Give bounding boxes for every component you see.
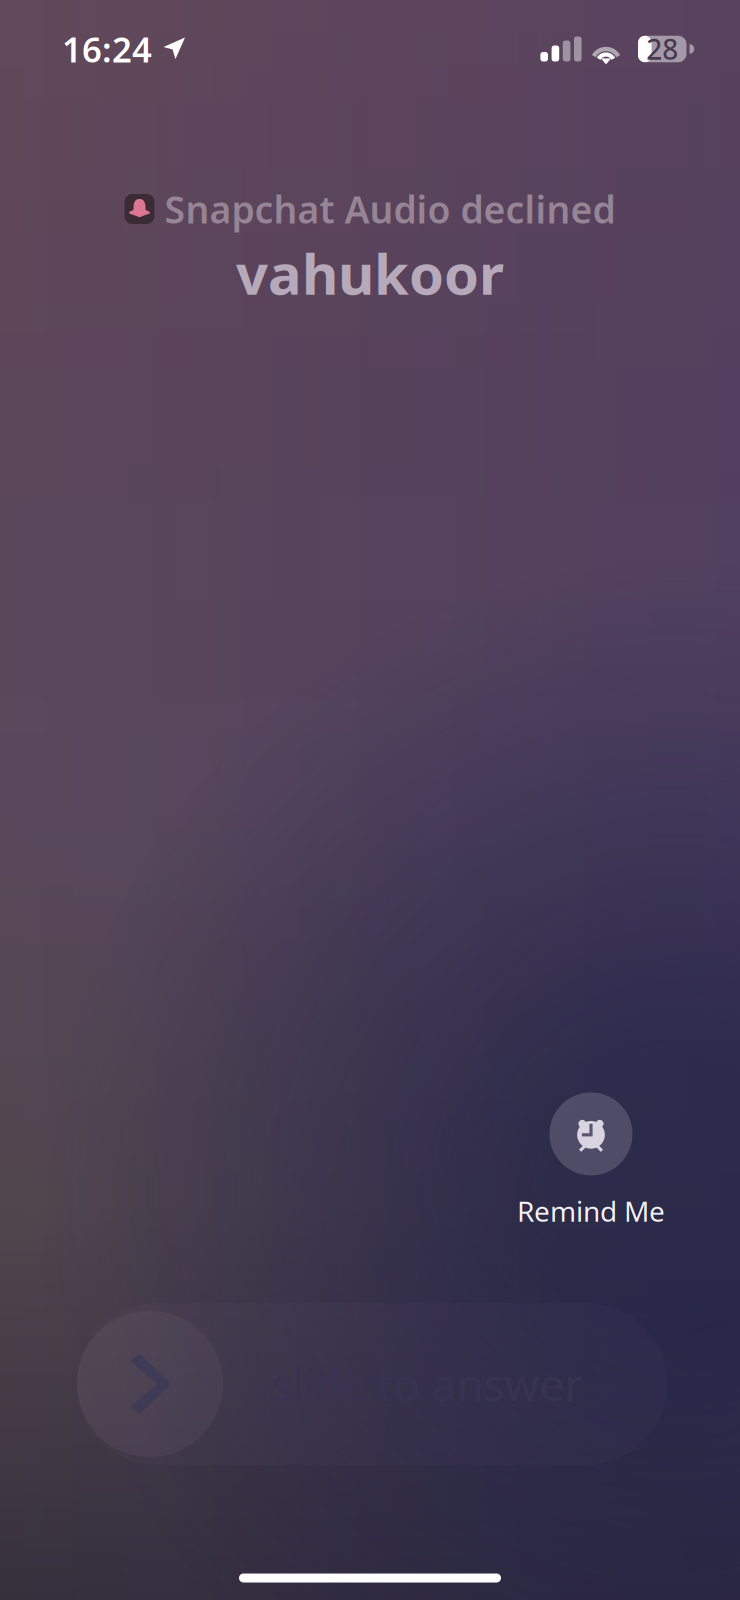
- staticText: Snapchat Audio declined: [164, 184, 615, 234]
- button[interactable]: Remind Me: [517, 1092, 665, 1230]
- staticText: 28: [646, 30, 678, 68]
- staticText: slide to answer: [271, 1355, 582, 1413]
- staticText: Remind Me: [517, 1192, 665, 1230]
- button[interactable]: Slide to answer: [77, 1311, 223, 1457]
- staticText: 16:24: [62, 26, 152, 72]
- staticText: vahukoor: [236, 236, 504, 310]
